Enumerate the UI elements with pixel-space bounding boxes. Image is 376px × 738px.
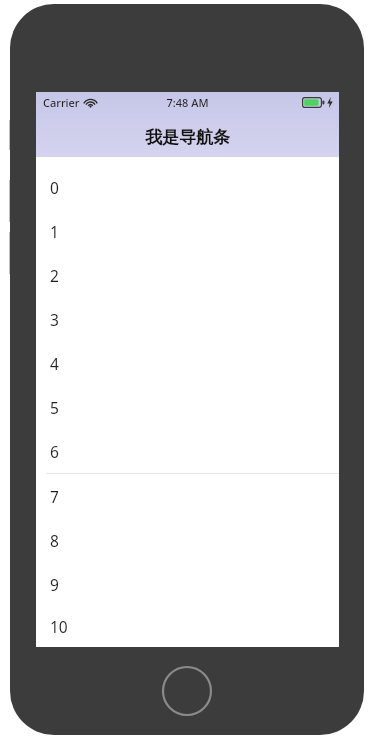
button[interactable]: 7: [36, 474, 339, 518]
button[interactable]: 3: [36, 297, 339, 341]
button[interactable]: 2: [36, 253, 339, 297]
button[interactable]: 6: [36, 429, 339, 473]
staticText: 4: [50, 353, 59, 374]
staticText: 7:48 AM: [166, 95, 209, 110]
staticText: 5: [50, 397, 59, 418]
button[interactable]: 0: [36, 165, 339, 209]
staticText: 1: [50, 221, 59, 242]
staticText: 7: [50, 486, 59, 507]
staticText: 10: [50, 616, 68, 637]
staticText: 2: [50, 265, 59, 286]
staticText: Carrier: [43, 95, 80, 110]
button[interactable]: 9: [36, 562, 339, 606]
button[interactable]: 10: [36, 606, 339, 647]
button[interactable]: Home: [161, 665, 213, 717]
staticText: 8: [50, 530, 59, 551]
staticText: 我是导航条: [145, 127, 230, 148]
button[interactable]: 5: [36, 385, 339, 429]
staticText: 3: [50, 309, 59, 330]
button[interactable]: 8: [36, 518, 339, 562]
staticText: 0: [50, 177, 59, 198]
button[interactable]: 1: [36, 209, 339, 253]
staticText: 9: [50, 574, 59, 595]
staticText: 6: [50, 441, 59, 462]
button[interactable]: 4: [36, 341, 339, 385]
